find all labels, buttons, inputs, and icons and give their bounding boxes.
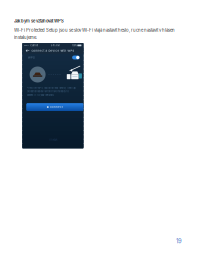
staticText: Wi-Fi Protected Setup jsou se slov Wi-Fi… (14, 28, 175, 33)
staticText: Press the WPS button on your device, the… (27, 86, 76, 89)
staticText: Connect (50, 105, 63, 109)
staticText: 9:41 AM (50, 44, 59, 47)
staticText: WPS (28, 56, 35, 59)
staticText: connect it to your network. (27, 94, 55, 96)
staticText: linksys (49, 138, 57, 141)
button[interactable]: Connect (27, 103, 83, 111)
staticText: the button below within two minutes to (27, 90, 69, 93)
staticText: Carrier (29, 44, 38, 47)
button[interactable]: WPS toggle (72, 55, 80, 60)
staticText: 19 (176, 237, 182, 245)
staticText: Jak bym se vztahovat WPS (14, 19, 64, 24)
staticText: instalujeme. (14, 35, 37, 40)
staticText: Connect a Device with WPS (31, 49, 74, 52)
button[interactable]: Back (24, 48, 31, 54)
staticText: 100% (72, 44, 77, 47)
